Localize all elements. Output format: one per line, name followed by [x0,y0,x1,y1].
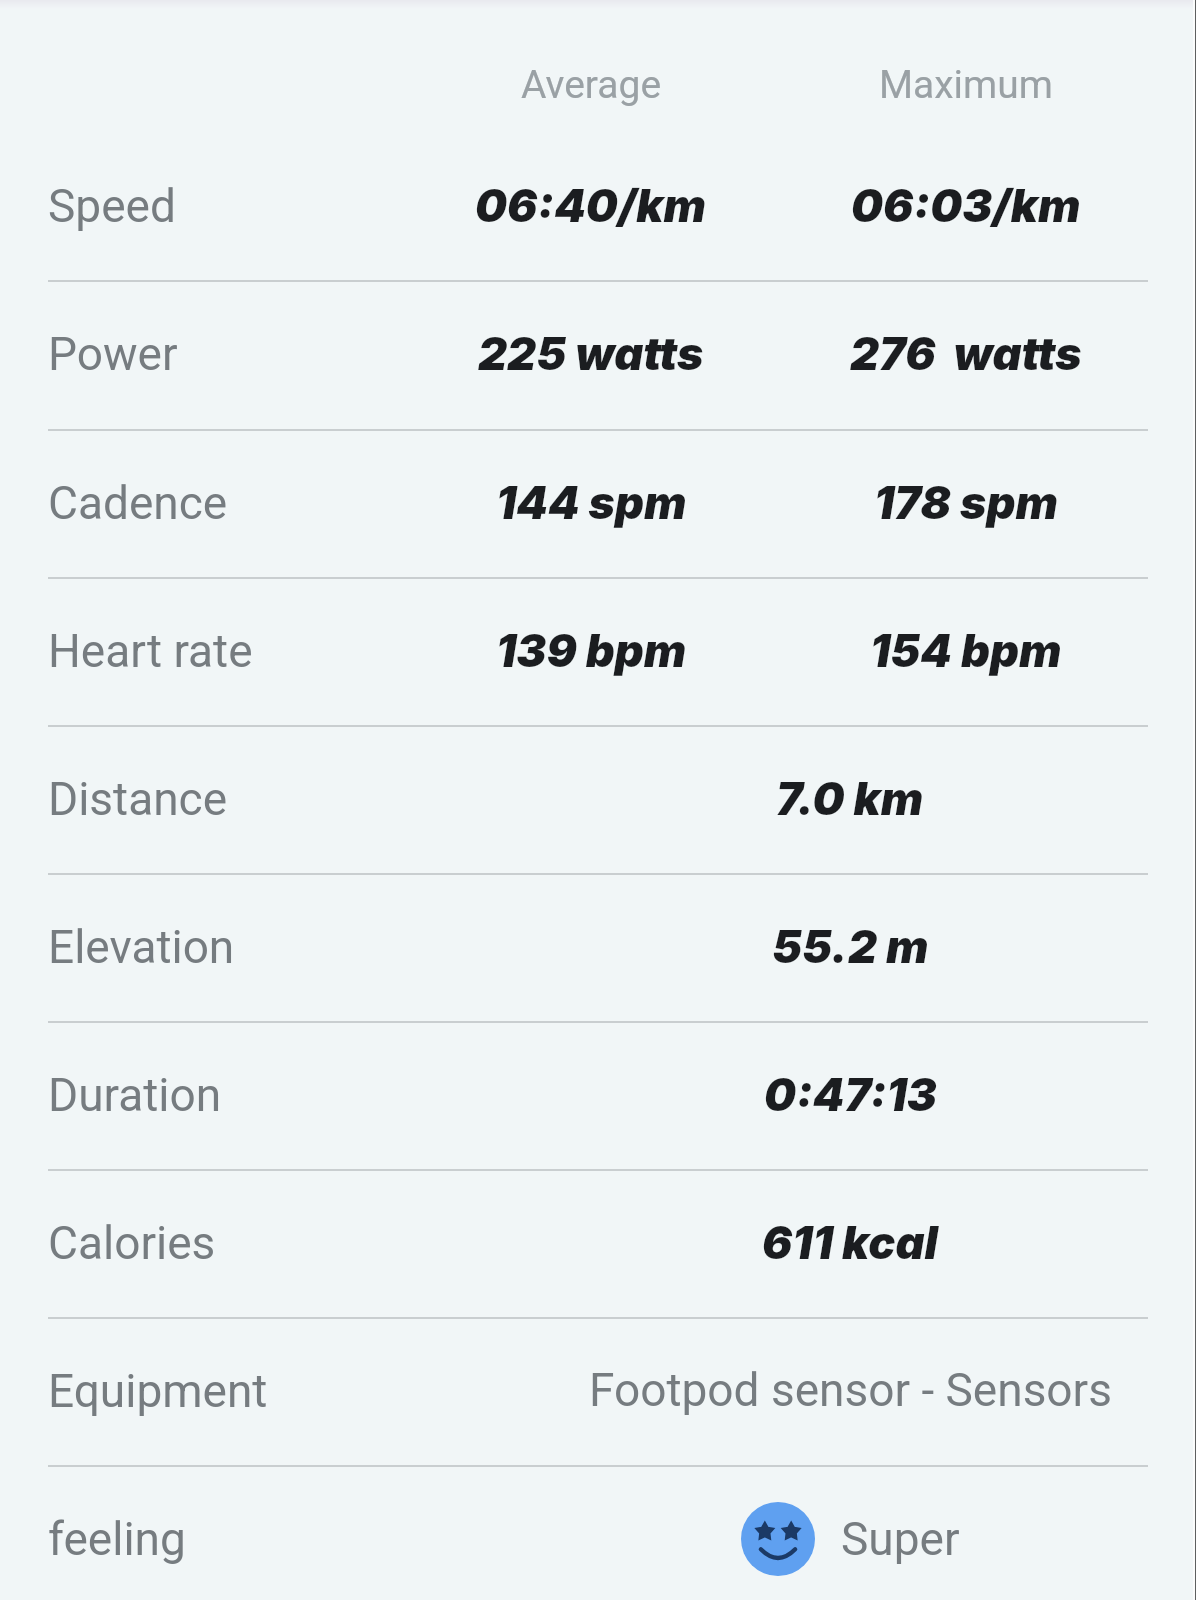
staticText: 154 bpm [870,623,1062,677]
staticText: Super [841,1512,960,1566]
button[interactable]: Cadence [0,429,1196,577]
button[interactable]: Calories [0,1169,1196,1317]
button[interactable]: Equipment [0,1317,1196,1465]
button[interactable]: Power [0,280,1196,428]
button[interactable]: feeling [0,1465,1196,1600]
staticText: 06:40/km [475,178,707,232]
staticText: 276 watts [850,326,1082,380]
other: Feeling: super [741,1502,815,1576]
staticText: 225 watts [478,326,704,380]
staticText: 0:47:13 [764,1067,937,1121]
staticText: Equipment [48,1364,268,1418]
staticText: Cadence [48,476,228,530]
staticText: 144 spm [496,475,687,529]
button[interactable]: Duration [0,1021,1196,1169]
staticText: 55.2 m [772,919,929,973]
staticText: 139 bpm [496,623,687,677]
staticText: 611 kcal [762,1215,938,1269]
button[interactable]: Heart rate [0,577,1196,725]
staticText: 7.0 km [776,771,924,825]
staticText: 06:03/km [851,178,1081,232]
staticText: Power [48,327,178,381]
staticText: 178 spm [874,475,1058,529]
staticText: Elevation [48,920,235,974]
staticText: Maximum [879,62,1053,108]
button[interactable]: Speed [0,132,1196,280]
staticText: feeling [48,1512,186,1566]
staticText: Calories [48,1216,216,1270]
button[interactable]: Elevation [0,873,1196,1021]
staticText: Duration [48,1068,222,1122]
staticText: Heart rate [48,624,253,678]
staticText: Footpod sensor - Sensors [589,1363,1112,1417]
button[interactable]: Distance [0,725,1196,873]
staticText: Distance [48,772,228,826]
staticText: Average [521,62,662,108]
staticText: Speed [48,179,176,233]
